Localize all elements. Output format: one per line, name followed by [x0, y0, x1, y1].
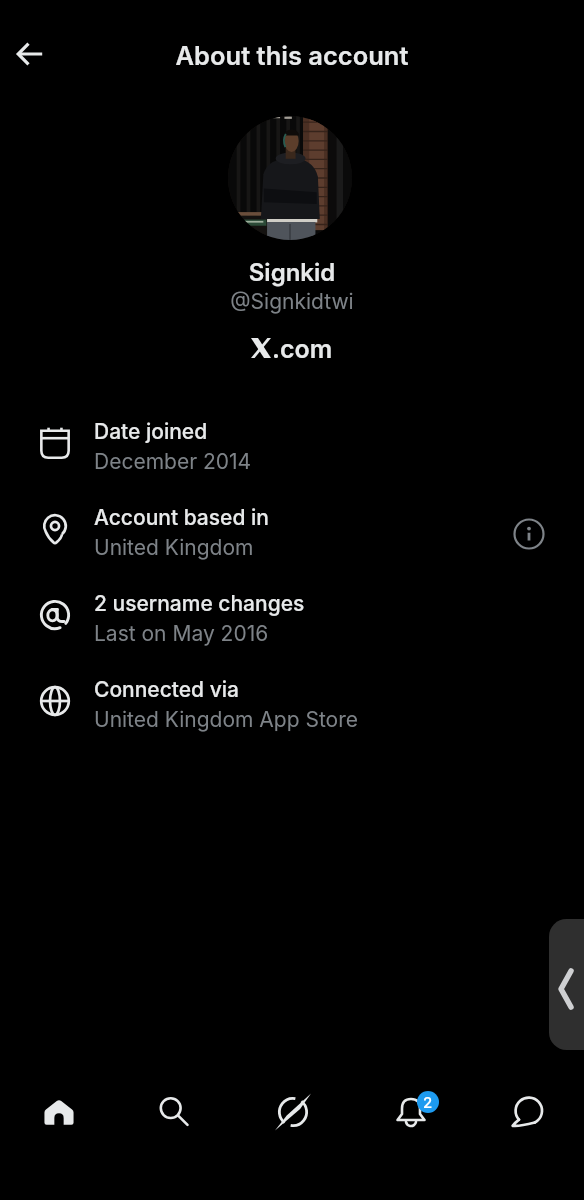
staticText: 2 username changes — [94, 591, 305, 616]
staticText: United Kingdom App Store — [94, 707, 358, 732]
staticText: Last on May 2016 — [94, 621, 269, 646]
button[interactable]: Back — [6, 30, 54, 78]
button[interactable]: Date joined — [0, 404, 584, 490]
button[interactable]: Messages — [494, 1079, 560, 1145]
button[interactable]: Profile photo — [228, 116, 352, 240]
button[interactable]: 2 username changes — [0, 576, 584, 662]
staticText: @Signkidtwi — [0, 289, 584, 314]
staticText: About this account — [0, 40, 584, 71]
button[interactable]: More info — [512, 517, 546, 551]
button[interactable]: Connected via — [0, 662, 584, 748]
staticText: .com — [272, 334, 333, 362]
button[interactable]: Back gesture — [549, 919, 584, 1050]
staticText: 2 — [423, 1093, 433, 1111]
button[interactable]: Home — [26, 1079, 92, 1145]
button[interactable]: Grok — [260, 1079, 326, 1145]
button[interactable]: Search — [141, 1079, 207, 1145]
staticText: Signkid — [0, 258, 584, 287]
button[interactable]: Notifications — [378, 1079, 444, 1145]
button[interactable]: Account based in — [0, 490, 584, 576]
staticText: Account based in — [94, 505, 269, 530]
button[interactable]: .com — [251, 334, 333, 362]
staticText: Date joined — [94, 419, 208, 444]
staticText: December 2014 — [94, 449, 252, 474]
staticText: Connected via — [94, 677, 239, 702]
staticText: United Kingdom — [94, 535, 254, 560]
